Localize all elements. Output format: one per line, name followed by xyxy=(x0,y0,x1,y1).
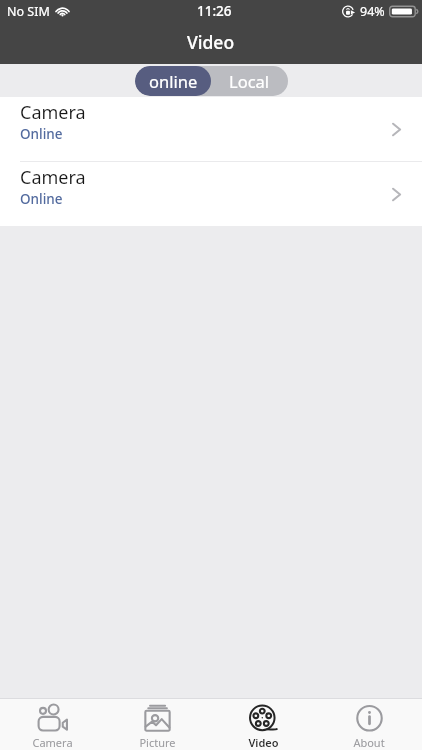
button[interactable]: Picture xyxy=(105,699,210,750)
staticText: Camera xyxy=(32,735,73,750)
button[interactable]: Local xyxy=(211,66,288,96)
staticText: No SIM xyxy=(7,3,50,20)
staticText: Online xyxy=(20,125,63,143)
button[interactable]: Camera xyxy=(0,699,105,750)
staticText: Picture xyxy=(139,735,176,750)
staticText: 94% xyxy=(360,3,385,20)
button[interactable]: Camera xyxy=(0,162,422,226)
button[interactable]: online xyxy=(135,66,211,96)
staticText: online xyxy=(149,70,198,92)
button[interactable]: Camera xyxy=(0,97,422,161)
staticText: Camera xyxy=(20,100,86,125)
staticText: Local xyxy=(229,70,270,92)
staticText: Camera xyxy=(20,165,86,190)
staticText: Video xyxy=(248,735,279,750)
staticText: Video xyxy=(187,30,235,54)
button[interactable]: About xyxy=(316,699,422,750)
staticText: 11:26 xyxy=(197,2,232,20)
button[interactable]: Video xyxy=(210,699,316,750)
staticText: About xyxy=(353,735,385,750)
staticText: Online xyxy=(20,190,63,208)
